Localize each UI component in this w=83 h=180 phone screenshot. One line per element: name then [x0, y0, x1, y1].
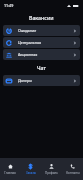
staticText: Центральная — [18, 40, 42, 45]
staticText: Чат — [37, 64, 46, 71]
other: Главная — [8, 164, 13, 169]
button[interactable]: Контакты — [62, 164, 83, 175]
staticText: 11:49 — [4, 3, 14, 8]
staticText: Главная — [4, 171, 16, 175]
button[interactable]: Дилеры — [3, 75, 80, 86]
button[interactable]: Ожидание — [3, 25, 80, 36]
staticText: Заказы — [26, 171, 36, 175]
staticText: Вакансии — [29, 14, 54, 21]
staticText: Акционная — [18, 52, 38, 57]
staticText: Профиль — [45, 171, 58, 175]
other: Профиль — [49, 164, 54, 169]
button[interactable]: Профиль — [41, 164, 62, 175]
button[interactable]: Центральная — [3, 37, 80, 48]
other: Заказы — [28, 164, 33, 169]
button[interactable]: Заказы — [20, 164, 41, 175]
button[interactable]: Акционная — [3, 49, 80, 60]
staticText: Ожидание — [18, 28, 37, 33]
staticText: Дилеры — [18, 78, 32, 83]
staticText: Контакты — [66, 171, 80, 175]
other: Контакты — [70, 164, 75, 169]
button[interactable]: Главная — [0, 164, 20, 175]
